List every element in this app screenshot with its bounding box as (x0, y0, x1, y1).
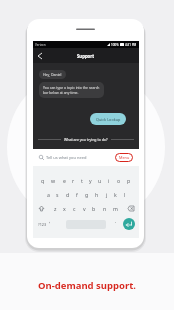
button[interactable]: d (66, 191, 70, 198)
staticText: a (47, 191, 50, 198)
button[interactable]: l (124, 191, 126, 198)
button[interactable]: h (95, 191, 99, 198)
staticText: 4:31 PM (125, 43, 137, 47)
staticText: Hey, Daniel (43, 72, 62, 77)
staticText: On-demand support. (0, 279, 174, 292)
staticText: m (113, 205, 118, 212)
button[interactable]: i (108, 177, 110, 184)
button[interactable]: p (127, 177, 131, 184)
button[interactable]: g (85, 191, 89, 198)
staticText: j (106, 191, 108, 198)
staticText: ?123 (38, 222, 47, 227)
button[interactable]: e (63, 177, 66, 184)
staticText: y (89, 177, 92, 184)
staticText: Menu (119, 155, 130, 160)
button[interactable]: s (56, 191, 59, 198)
staticText: u (98, 177, 102, 184)
staticText: o (117, 177, 121, 184)
button[interactable]: f (76, 191, 78, 198)
staticText: t (81, 177, 83, 184)
button[interactable]: Menu (115, 153, 133, 162)
button[interactable] (36, 52, 44, 60)
staticText: What are you trying to do? (64, 137, 108, 142)
staticText: r (72, 177, 75, 184)
staticText: e (63, 177, 66, 184)
staticText: b (92, 205, 96, 212)
button[interactable] (123, 218, 135, 230)
button[interactable]: ?123 (35, 218, 49, 230)
button[interactable]: y (89, 177, 92, 184)
staticText: Tell us what you need (46, 155, 87, 160)
button[interactable]: o (117, 177, 121, 184)
button[interactable]: k (114, 191, 117, 198)
button[interactable]: q (41, 177, 45, 184)
staticText: w (51, 177, 56, 184)
staticText: , (49, 218, 51, 225)
button[interactable]: t (81, 177, 83, 184)
staticText: n (103, 205, 107, 212)
staticText: s (56, 191, 59, 198)
button[interactable]: r (72, 177, 75, 184)
button[interactable]: a (47, 191, 50, 198)
staticText: h (95, 191, 99, 198)
staticText: k (114, 191, 117, 198)
button[interactable]: w (51, 177, 56, 184)
staticText: i (108, 177, 110, 184)
staticText: g (85, 191, 89, 198)
staticText: You can type a topic into the search bar… (43, 85, 100, 95)
button[interactable]: u (98, 177, 102, 184)
staticText: z (54, 205, 57, 212)
button[interactable]: Quick Lookup (90, 113, 126, 125)
staticText: Verizon (35, 43, 46, 47)
button[interactable] (125, 202, 137, 214)
button[interactable]: Tell us what you need (33, 149, 139, 166)
staticText: p (127, 177, 131, 184)
staticText: v (83, 205, 86, 212)
staticText: Support (77, 53, 95, 59)
staticText: d (66, 191, 70, 198)
staticText: q (41, 177, 45, 184)
staticText: x (63, 205, 66, 212)
button[interactable] (35, 202, 47, 214)
staticText: Quick Lookup (96, 117, 121, 122)
staticText: . (115, 218, 117, 225)
staticText: f (76, 191, 78, 198)
button[interactable]: j (106, 191, 108, 198)
staticText: l (124, 191, 126, 198)
staticText: c (73, 205, 76, 212)
staticText: 100% (111, 43, 119, 47)
